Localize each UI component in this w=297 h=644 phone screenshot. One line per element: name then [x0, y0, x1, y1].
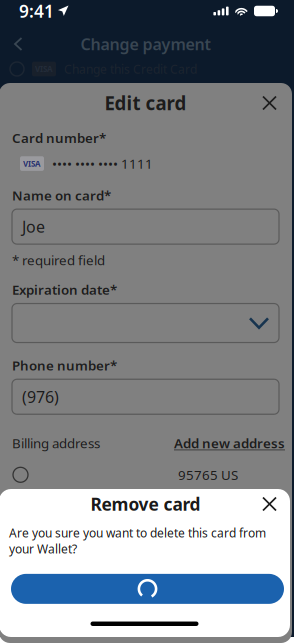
button[interactable]: Close	[259, 493, 280, 514]
staticText: •••• •••• •••• 1111	[52, 155, 153, 172]
button[interactable]: Select billing address	[13, 467, 28, 482]
button[interactable]: Expiration date	[0, 303, 292, 342]
staticText: VISA	[23, 158, 41, 169]
staticText: Change payment	[80, 33, 210, 55]
staticText: Expiration date*	[12, 281, 117, 298]
button[interactable]: Confirm remove card	[0, 574, 284, 604]
staticText: 9:41	[19, 0, 54, 22]
staticText: VISA	[35, 64, 53, 74]
staticText: Billing address	[12, 434, 100, 452]
staticText: Change this Credit Card	[64, 61, 197, 77]
staticText: 95765 US	[178, 466, 238, 484]
staticText: Edit card	[104, 91, 186, 115]
staticText: Joe	[22, 216, 45, 237]
button[interactable]: Add new address	[174, 434, 285, 452]
staticText: Remove card	[90, 492, 200, 515]
staticText: * required field	[12, 251, 105, 269]
staticText: Name on card*	[12, 186, 111, 204]
staticText: Phone number*	[12, 356, 117, 374]
staticText: Card number*	[12, 129, 106, 147]
button[interactable]: Close edit card	[258, 91, 281, 114]
button[interactable]: Back	[7, 30, 30, 58]
staticText: Add new address	[174, 434, 285, 452]
staticText: (976)	[22, 386, 59, 407]
staticText: Are you sure you want to delete this car…	[9, 525, 266, 557]
